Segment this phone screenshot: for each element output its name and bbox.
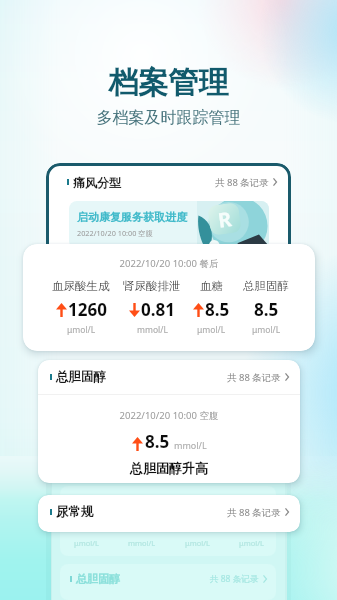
staticText: 2022/10/20 10:00 餐后 [23, 257, 315, 270]
staticText: 共 88 条记录 [210, 573, 259, 585]
button[interactable]: 总胆固醇 [38, 360, 300, 394]
staticText: 1260 [68, 298, 107, 321]
staticText: μmol/L [252, 324, 281, 336]
staticText: 总胆固醇 [243, 279, 289, 293]
staticText: 总胆固醇升高 [38, 460, 300, 476]
staticText: 肾尿酸排泄 [123, 279, 181, 293]
staticText: 2022/10/20 10:00 空腹 [38, 409, 300, 422]
staticText: 2022/10/20 10:00 空腹 [77, 228, 153, 238]
staticText: mmol/L [137, 324, 168, 336]
staticText: μmol/L [67, 324, 96, 336]
staticText: 血糖 [200, 279, 223, 293]
staticText: R [216, 205, 234, 234]
button[interactable]: 尿常规 [38, 495, 300, 529]
staticText: 尿常规 [56, 504, 94, 520]
staticText: 总胆固醇 [76, 572, 120, 586]
staticText: 血尿酸生成 [52, 279, 110, 293]
staticText: 共 88 条记录 [227, 371, 281, 384]
staticText: 共 88 条记录 [227, 506, 281, 519]
staticText: 启动康复服务获取进度 [77, 210, 187, 224]
staticText: 总胆固醇 [56, 369, 106, 385]
button[interactable]: 总胆固醇 [60, 564, 276, 594]
staticText: 8.5 [145, 430, 170, 453]
staticText: 8.5 [205, 298, 230, 321]
staticText: 痛风分型 [73, 175, 121, 190]
staticText: μmol/L [185, 538, 210, 548]
staticText: mmol/L [174, 439, 207, 451]
staticText: μmol/L [74, 538, 99, 548]
staticText: 8.5 [254, 298, 279, 321]
staticText: μmol/L [197, 324, 226, 336]
button[interactable]: 痛风分型 [46, 163, 291, 201]
staticText: mmol/L [128, 538, 156, 548]
staticText: 0.81 [141, 298, 175, 321]
staticText: 多档案及时跟踪管理 [0, 108, 337, 128]
button[interactable]: 康复服务 [69, 201, 269, 249]
other: 康复服务 [197, 201, 269, 249]
staticText: μmol/L [239, 538, 264, 548]
staticText: 档案管理 [0, 64, 337, 102]
staticText: 共 88 条记录 [215, 176, 269, 189]
